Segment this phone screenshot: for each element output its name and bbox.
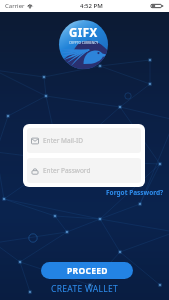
button[interactable]: Enter Mail-ID [27, 128, 141, 153]
staticText: GIFX [69, 25, 98, 41]
button[interactable]: Enter Password [27, 158, 141, 183]
staticText: PROCEED [67, 265, 108, 277]
staticText: Enter Password [43, 166, 91, 175]
button[interactable]: PROCEED [41, 262, 133, 279]
staticText: Enter Mail-ID [43, 136, 83, 145]
staticText: 4:52 PM [80, 2, 103, 10]
staticText: CRYPTO CURRENCY [69, 41, 99, 45]
button[interactable]: CREATE WALLET [51, 283, 119, 295]
staticText: Forgot Password? [106, 188, 164, 197]
staticText: CREATE WALLET [51, 283, 119, 295]
button[interactable]: Forgot Password? [106, 188, 164, 197]
staticText: Carrier [5, 2, 25, 10]
